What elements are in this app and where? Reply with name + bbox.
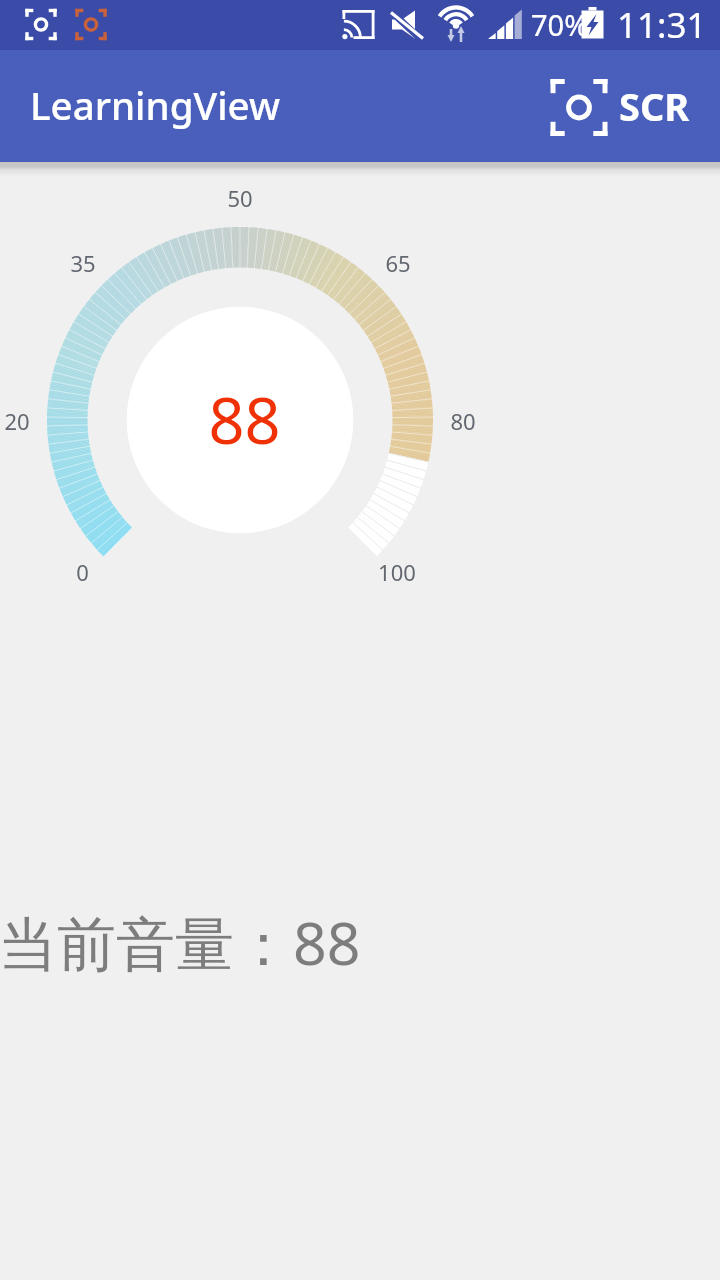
staticText: 100 — [378, 557, 416, 587]
staticText: SCR — [619, 80, 690, 132]
staticText: 35 — [70, 248, 96, 278]
button[interactable]: Screen recorder — [550, 77, 679, 135]
staticText: 当前音量：88 — [0, 902, 361, 983]
staticText: LearningView — [30, 79, 280, 131]
staticText: 70% — [531, 5, 589, 44]
staticText: 11:31 — [617, 1, 707, 49]
staticText: 50 — [227, 183, 253, 213]
staticText: 20 — [4, 406, 30, 436]
staticText: 0 — [76, 557, 89, 587]
staticText: 88 — [208, 377, 281, 463]
staticText: 65 — [385, 248, 411, 278]
staticText: 80 — [450, 406, 476, 436]
